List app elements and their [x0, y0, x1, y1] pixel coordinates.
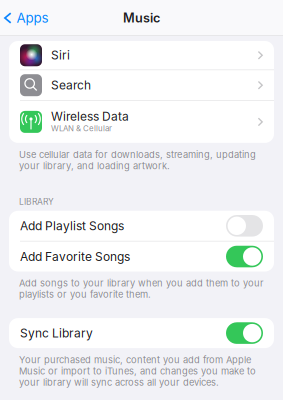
staticText: WLAN & Cellular	[51, 124, 112, 133]
button[interactable]: Add Favorite Songs	[9, 241, 274, 271]
button[interactable]: Wireless Data	[9, 101, 274, 143]
staticText: LIBRARY	[19, 196, 54, 207]
button[interactable]: Search	[9, 70, 274, 100]
staticText: Wireless Data	[51, 109, 129, 124]
button[interactable]: Apps	[0, 3, 57, 33]
staticText: Add Playlist Songs	[20, 219, 124, 233]
staticText: Use cellular data for downloads, streami…	[19, 149, 256, 171]
button[interactable]: Add Playlist Songs	[9, 211, 274, 241]
staticText: Apps	[17, 10, 49, 26]
staticText: Add songs to your library when you add t…	[19, 277, 264, 300]
button[interactable]: Siri	[9, 41, 274, 69]
staticText: Search	[51, 78, 91, 92]
staticText: Sync Library	[20, 326, 93, 340]
button[interactable]: Sync Library	[9, 318, 274, 348]
staticText: Siri	[51, 48, 70, 62]
staticText: Your purchased music, content you add fr…	[19, 354, 256, 388]
staticText: Add Favorite Songs	[20, 249, 130, 264]
staticText: Music	[123, 10, 160, 26]
